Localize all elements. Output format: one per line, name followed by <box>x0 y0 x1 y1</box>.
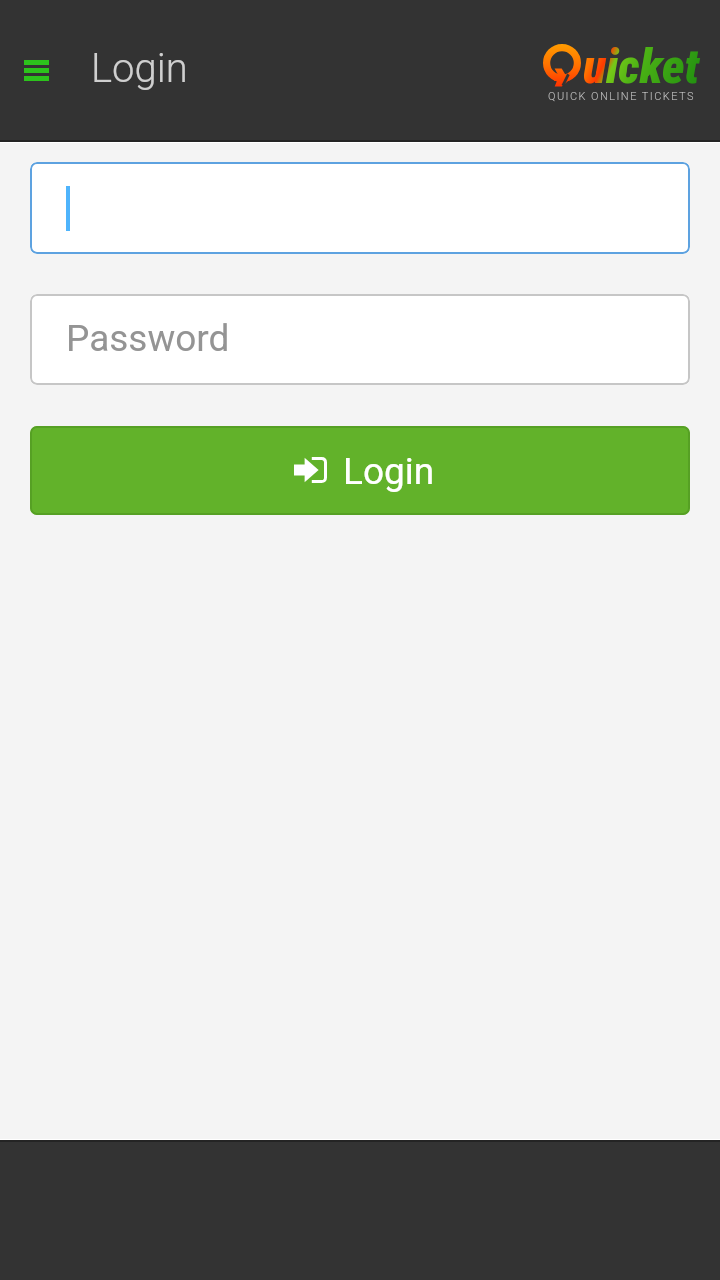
staticText: uicket <box>583 38 700 94</box>
staticText: QUICK ONLINE TICKETS <box>548 90 695 103</box>
button[interactable]: Open navigation menu <box>9 43 63 97</box>
button[interactable]: Login <box>30 426 690 515</box>
button[interactable]: Email or username <box>30 162 690 254</box>
staticText: Password <box>66 317 230 360</box>
staticText: Login <box>91 45 188 92</box>
staticText: Login <box>343 450 435 493</box>
button[interactable]: Password <box>30 294 690 385</box>
